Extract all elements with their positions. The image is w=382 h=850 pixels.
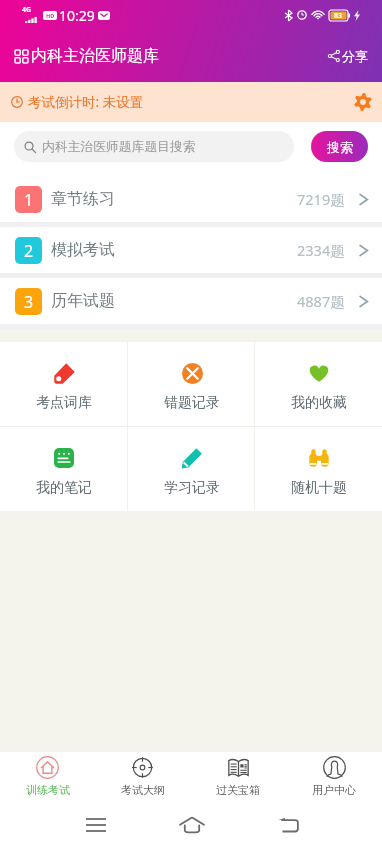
staticText: 我的笔记 (36, 479, 92, 497)
button[interactable]: 内科主治医师题库题目搜索 (14, 131, 294, 162)
button[interactable]: 用户中心 (286, 752, 382, 800)
staticText: 83 (334, 11, 343, 21)
button[interactable]: 学习记录 (128, 427, 255, 511)
button[interactable]: 训练考试 (0, 752, 95, 800)
staticText: 4G (22, 5, 32, 15)
button[interactable]: 我的笔记 (0, 427, 128, 511)
button[interactable]: 过关宝箱 (190, 752, 286, 800)
staticText: 我的收藏 (291, 394, 347, 412)
button[interactable]: 3 (0, 278, 382, 324)
button[interactable]: 错题记录 (128, 342, 255, 426)
staticText: 训练考试 (26, 783, 70, 797)
staticText: 1 (24, 189, 34, 211)
button[interactable]: 分享 (324, 42, 372, 70)
button[interactable]: 搜索 (311, 131, 368, 162)
button[interactable]: Home (170, 803, 214, 847)
staticText: 内科主治医师题库题目搜索 (42, 139, 196, 155)
staticText: 2334题 (297, 240, 345, 260)
staticText: 考试倒计时: 未设置 (28, 93, 144, 111)
button[interactable]: Recents (74, 803, 118, 847)
staticText: 用户中心 (312, 783, 356, 797)
staticText: 分享 (342, 48, 368, 64)
staticText: 随机十题 (291, 479, 347, 497)
staticText: 过关宝箱 (216, 783, 260, 797)
button[interactable]: Back (266, 803, 310, 847)
staticText: 考点词库 (36, 394, 92, 412)
staticText: 章节练习 (51, 189, 115, 209)
staticText: HD (46, 12, 55, 19)
button[interactable]: 考试大纲 (95, 752, 190, 800)
staticText: 历年试题 (51, 291, 115, 311)
staticText: 考试大纲 (121, 783, 165, 797)
button[interactable]: 考点词库 (0, 342, 128, 426)
staticText: 10:29 (59, 6, 95, 25)
staticText: 3 (24, 291, 34, 313)
button[interactable]: 1 (0, 176, 382, 222)
button[interactable]: 2 (0, 227, 382, 273)
staticText: 2 (24, 240, 34, 262)
button[interactable]: 设置 (350, 89, 376, 115)
staticText: 学习记录 (164, 479, 220, 497)
button[interactable]: 随机十题 (255, 427, 382, 511)
staticText: 模拟考试 (51, 240, 115, 260)
staticText: 7219题 (297, 189, 345, 209)
staticText: 搜索 (327, 139, 353, 155)
staticText: 内科主治医师题库 (31, 46, 159, 66)
staticText: 错题记录 (164, 394, 220, 412)
staticText: 4887题 (297, 291, 345, 311)
button[interactable]: 我的收藏 (255, 342, 382, 426)
